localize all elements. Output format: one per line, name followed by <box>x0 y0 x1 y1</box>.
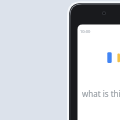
button[interactable]: what is this <box>82 88 120 99</box>
staticText: 10:00 <box>80 29 91 34</box>
